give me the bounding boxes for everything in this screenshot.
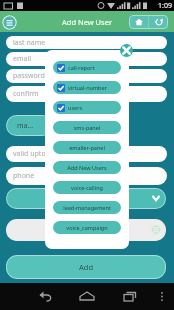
button[interactable]: virtual-number xyxy=(53,81,121,94)
button[interactable]: lead-management xyxy=(53,201,121,214)
button[interactable]: Pick date xyxy=(6,219,166,241)
button[interactable]: Refresh xyxy=(149,15,168,29)
button[interactable]: emailer-panel xyxy=(53,141,121,154)
button[interactable]: Add New Users xyxy=(53,161,121,174)
staticText: email xyxy=(13,54,32,64)
staticText: voice-calling xyxy=(53,184,121,191)
button[interactable]: ma... xyxy=(6,115,53,136)
staticText: phone xyxy=(13,171,35,181)
button[interactable]: confirm xyxy=(6,86,167,102)
button[interactable]: Select option xyxy=(6,188,166,209)
staticText: voice_campaign xyxy=(53,224,121,231)
staticText: call-report xyxy=(68,64,95,71)
staticText: Add New User xyxy=(62,17,112,27)
staticText: users xyxy=(68,104,83,111)
button[interactable]: voice_campaign xyxy=(53,221,121,234)
button[interactable]: call-report xyxy=(53,61,121,74)
staticText: last name xyxy=(13,38,46,48)
staticText: valid upto xyxy=(13,149,46,159)
staticText: Add New Users xyxy=(53,164,121,171)
staticText: Add xyxy=(79,262,94,272)
staticText: ma... xyxy=(17,121,34,131)
staticText: emailer-panel xyxy=(53,144,121,151)
button[interactable]: Open navigation menu xyxy=(2,15,17,30)
button[interactable]: valid upto xyxy=(6,146,167,162)
staticText: confirm xyxy=(13,89,39,99)
staticText: sms-panel xyxy=(53,124,121,131)
button[interactable]: phone xyxy=(6,167,167,185)
button[interactable]: password xyxy=(6,69,167,83)
button[interactable]: voice-calling xyxy=(53,181,121,194)
button[interactable]: Home xyxy=(129,15,148,29)
button[interactable]: users xyxy=(53,101,121,114)
button[interactable]: last name xyxy=(6,36,167,49)
staticText: password xyxy=(13,71,45,81)
button[interactable]: Close xyxy=(120,44,133,57)
staticText: 1:09 xyxy=(158,1,172,11)
button[interactable]: sms-panel xyxy=(53,121,121,134)
button[interactable]: email xyxy=(6,52,167,66)
staticText: lead-management xyxy=(53,204,121,211)
staticText: virtual-number xyxy=(68,84,107,91)
button[interactable]: Add xyxy=(6,255,166,279)
